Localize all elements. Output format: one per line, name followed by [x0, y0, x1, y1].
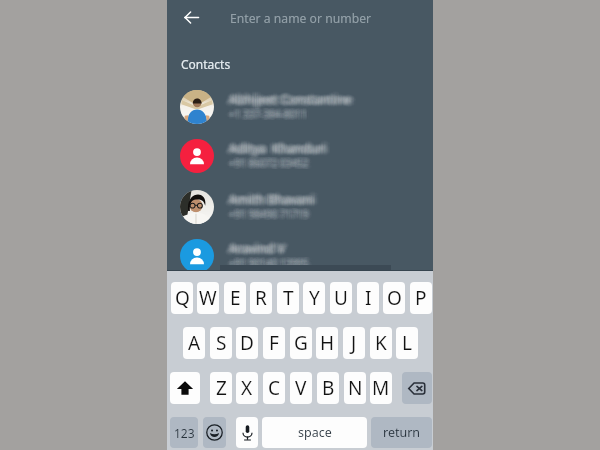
staticText: +91 98490 71719 [225, 207, 305, 221]
button[interactable]: Q [171, 282, 193, 314]
staticText: D [240, 330, 254, 356]
button[interactable]: C [263, 372, 285, 404]
staticText: Amith Bhavani [227, 189, 313, 206]
staticText: +1 337-384-8011 [233, 108, 311, 122]
button[interactable]: E [224, 282, 246, 314]
staticText: +1 337-384-8011 [230, 109, 308, 123]
staticText: Amith Bhavani [226, 190, 312, 207]
button[interactable]: B [317, 372, 339, 404]
staticText: Amith Bhavani [227, 194, 313, 211]
staticText: G [294, 330, 308, 356]
staticText: +91 90140 13995 [229, 254, 309, 268]
staticText: +91 86072 03452 [229, 154, 309, 168]
staticText: +1 337-384-8011 [231, 109, 309, 123]
staticText: Aravind V [229, 239, 285, 256]
button[interactable]: L [396, 327, 418, 359]
staticText: V [295, 375, 307, 401]
staticText: Aravind V [232, 238, 288, 255]
staticText: L [402, 330, 412, 356]
staticText: +91 90140 13995 [229, 255, 309, 269]
button[interactable]: I [357, 282, 379, 314]
button[interactable]: D [236, 327, 258, 359]
button[interactable]: Abhijeet Constantine [167, 83, 433, 131]
button[interactable]: Voice input [236, 417, 258, 448]
staticText: +91 90140 13995 [226, 257, 306, 271]
button[interactable]: Emoji [203, 417, 226, 448]
staticText: Aditya Khanduri [226, 139, 324, 156]
button[interactable]: Z [210, 372, 232, 404]
button[interactable]: 123 [170, 417, 198, 448]
button[interactable]: R [250, 282, 272, 314]
staticText: Aravind V [226, 239, 282, 256]
staticText: Aditya Khanduri [234, 141, 332, 158]
button[interactable]: U [330, 282, 352, 314]
staticText: Aravind V [229, 243, 285, 260]
button[interactable]: O [383, 282, 405, 314]
button[interactable]: W [197, 282, 219, 314]
button[interactable]: S [210, 327, 232, 359]
button[interactable]: Aditya Khanduri [167, 132, 433, 180]
button[interactable]: F [263, 327, 285, 359]
staticText: Aditya Khanduri [229, 142, 327, 159]
staticText: Aravind V [229, 241, 285, 258]
staticText: +91 98490 71719 [233, 206, 313, 220]
staticText: +91 90140 13995 [228, 257, 308, 271]
staticText: +1 337-384-8011 [231, 106, 309, 120]
staticText: Abhijeet Constantine [229, 92, 352, 109]
staticText: Aditya Khanduri [229, 138, 327, 155]
button[interactable]: Back [178, 4, 204, 30]
staticText: Aditya Khanduri [230, 143, 328, 160]
staticText: +1 337-384-8011 [229, 107, 307, 121]
staticText: +91 86072 03452 [225, 157, 305, 171]
staticText: Aditya Khanduri [232, 140, 330, 157]
staticText: Aravind V [229, 238, 285, 255]
staticText: +1 337-384-8011 [231, 105, 309, 119]
button[interactable]: return [371, 417, 432, 448]
button[interactable]: space [262, 417, 367, 448]
button[interactable]: H [316, 327, 338, 359]
staticText: Aditya Khanduri [227, 142, 325, 159]
staticText: +91 86072 03452 [229, 155, 309, 169]
button[interactable]: M [370, 372, 392, 404]
button[interactable]: Shift [170, 372, 200, 404]
button[interactable]: X [236, 372, 258, 404]
button[interactable]: T [277, 282, 299, 314]
staticText: +91 98490 71719 [228, 208, 308, 222]
staticText: Aditya Khanduri [229, 141, 327, 158]
button[interactable]: J [343, 327, 365, 359]
staticText: +91 90140 13995 [233, 257, 313, 271]
staticText: Abhijeet Constantine [227, 93, 350, 110]
staticText: Abhijeet Constantine [232, 89, 355, 106]
staticText: Aravind V [232, 242, 288, 259]
button[interactable]: Y [303, 282, 325, 314]
staticText: Aravind V [224, 241, 280, 258]
staticText: +91 98490 71719 [229, 205, 309, 219]
staticText: +91 86072 03452 [226, 155, 306, 169]
button[interactable]: V [290, 372, 312, 404]
button[interactable]: N [344, 372, 366, 404]
button[interactable]: K [370, 327, 392, 359]
button[interactable]: Aravind V [167, 232, 433, 280]
button[interactable]: A [183, 327, 205, 359]
staticText: +91 86072 03452 [231, 155, 311, 169]
staticText: O [387, 285, 402, 311]
staticText: +1 337-384-8011 [228, 109, 306, 123]
staticText: +91 98490 71719 [231, 205, 311, 219]
staticText: +91 86072 03452 [228, 154, 308, 168]
button[interactable]: P [410, 282, 432, 314]
staticText: Aravind V [229, 237, 285, 254]
staticText: +91 98490 71719 [229, 207, 309, 221]
staticText: +1 337-384-8011 [226, 108, 304, 122]
button[interactable]: Amith Bhavani [167, 183, 433, 231]
button[interactable]: G [290, 327, 312, 359]
staticText: +91 90140 13995 [229, 256, 309, 270]
staticText: H [320, 330, 335, 356]
button[interactable]: Backspace [402, 372, 432, 404]
staticText: Abhijeet Constantine [234, 90, 357, 107]
staticText: Abhijeet Constantine [227, 91, 350, 108]
staticText: Contacts [181, 56, 231, 72]
staticText: W [199, 285, 217, 311]
staticText: return [383, 424, 421, 441]
staticText: Amith Bhavani [232, 193, 318, 210]
staticText: +1 337-384-8011 [229, 105, 307, 119]
